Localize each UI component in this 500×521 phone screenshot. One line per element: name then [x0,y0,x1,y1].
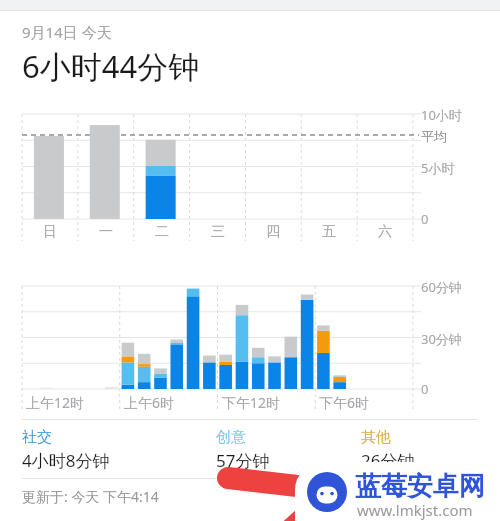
staticText: 5小时 [421,159,455,177]
staticText: 社交 [22,428,52,447]
staticText: 0 [421,210,429,228]
staticText: 蓝莓安卓网 [355,470,485,503]
staticText: 4小时8分钟 [22,449,110,472]
staticText: 上午12时 [26,393,85,412]
staticText: 6小时44分钟 [22,45,200,87]
staticText: 57分钟 [216,449,270,472]
staticText: 五 [301,223,357,241]
staticText: 9月14日 今天 [22,22,112,42]
staticText: 26分钟 [361,449,415,472]
staticText: 10小时 [421,106,462,124]
staticText: 更新于: 今天 下午4:14 [22,487,159,506]
button[interactable]: 社交 [22,428,216,472]
button[interactable]: 创意 [216,428,361,472]
button[interactable]: 10小时 [0,100,500,245]
staticText: 下午6时 [319,393,370,412]
button[interactable]: 60分钟 [0,272,500,415]
staticText: 三 [190,223,246,241]
staticText: 其他 [361,428,391,447]
button[interactable]: 其他 [361,428,461,472]
staticText: 30分钟 [421,330,462,348]
staticText: 60分钟 [421,278,462,296]
staticText: 创意 [216,428,246,447]
staticText: 四 [245,223,301,241]
staticText: 下午12时 [222,393,281,412]
staticText: 日 [22,223,78,241]
staticText: 平均 [421,128,447,144]
staticText: 二 [134,223,190,241]
staticText: 六 [357,223,413,241]
staticText: 0 [421,380,429,398]
staticText: 一 [78,223,134,241]
staticText: www.lmkjst.com [357,500,473,520]
staticText: 上午6时 [124,393,175,412]
